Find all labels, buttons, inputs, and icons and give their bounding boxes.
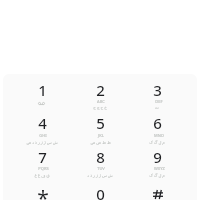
staticText: GHI [39, 133, 47, 138]
staticText: MNO [154, 133, 164, 138]
staticText: 9 [153, 147, 162, 167]
staticText: 5 [96, 113, 105, 133]
button[interactable]: three [128, 75, 186, 108]
button[interactable]: pound [128, 179, 186, 200]
staticText: ش س ژ ز ر ذ د [87, 173, 113, 178]
button[interactable]: eight [71, 142, 129, 175]
button[interactable]: one [13, 75, 71, 108]
button[interactable]: two [71, 75, 129, 108]
staticText: DEF [155, 99, 163, 104]
staticText: PQRS [38, 166, 49, 171]
staticText: ق ف غ ع [34, 173, 50, 178]
staticText: 1 [38, 80, 47, 100]
staticText: ث [155, 105, 159, 110]
staticText: WXYZ [154, 166, 165, 171]
staticText: خ ح چ ج [93, 105, 107, 110]
staticText: م ل گ ک [149, 140, 165, 145]
staticText: 7 [38, 147, 47, 167]
button[interactable]: star [13, 179, 71, 200]
button[interactable]: five [71, 108, 129, 141]
staticText: ABC [97, 99, 105, 104]
staticText: 3 [153, 80, 162, 100]
staticText: 8 [96, 147, 105, 167]
button[interactable]: seven [13, 142, 71, 175]
staticText: 6 [153, 113, 162, 133]
staticText: JKL [98, 133, 104, 138]
staticText: ش س ژ ز ر ذ د ض [26, 140, 58, 145]
button[interactable]: zero [71, 179, 129, 200]
staticText: 2 [96, 80, 105, 100]
button[interactable]: four [13, 108, 71, 141]
staticText: 4 [38, 113, 47, 133]
staticText: TUV [97, 166, 105, 171]
button[interactable]: six [128, 108, 186, 141]
button[interactable]: nine [128, 142, 186, 175]
staticText: 0 [96, 184, 105, 200]
staticText: ظ ط ض ص [90, 140, 111, 145]
staticText: م ل گ ک [149, 173, 165, 178]
staticText: * [37, 184, 49, 200]
